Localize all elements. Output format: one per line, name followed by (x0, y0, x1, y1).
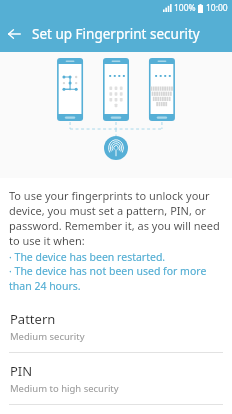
staticText: · The device has not been used for more … (9, 264, 223, 293)
staticText: Medium to high security (10, 382, 119, 395)
staticText: To use your fingerprints to unlock your … (9, 188, 223, 248)
staticText: 100% (174, 2, 196, 14)
button[interactable]: Pattern (0, 301, 232, 352)
button[interactable]: Back (0, 20, 28, 48)
button[interactable]: PIN (0, 353, 232, 404)
staticText: 10:00 (206, 2, 228, 14)
staticText: Set up Fingerprint security (32, 25, 200, 43)
staticText: Medium security (10, 330, 85, 343)
staticText: PIN (10, 362, 33, 380)
staticText: Pattern (10, 310, 56, 328)
staticText: · The device has been restarted. (9, 250, 166, 264)
